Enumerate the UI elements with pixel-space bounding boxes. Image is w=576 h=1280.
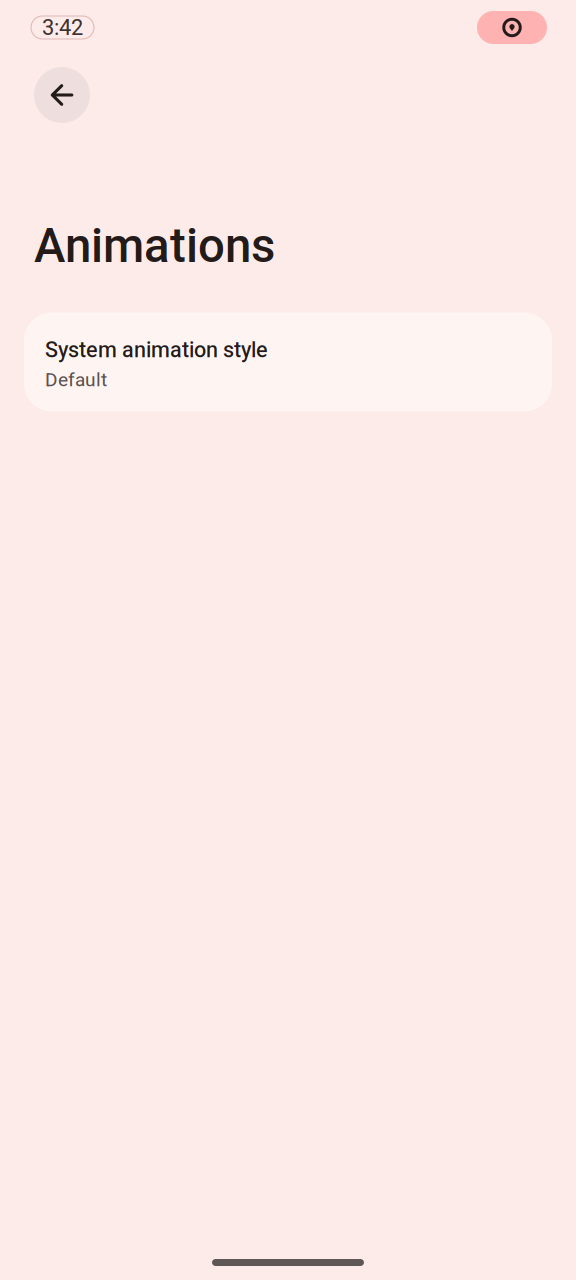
button[interactable]: Back [34, 67, 90, 123]
staticText: Default [45, 368, 107, 391]
button[interactable]: System animation style [24, 312, 552, 411]
staticText: System animation style [45, 337, 268, 362]
staticText: 3:42 [42, 15, 83, 40]
staticText: Animations [34, 218, 275, 273]
